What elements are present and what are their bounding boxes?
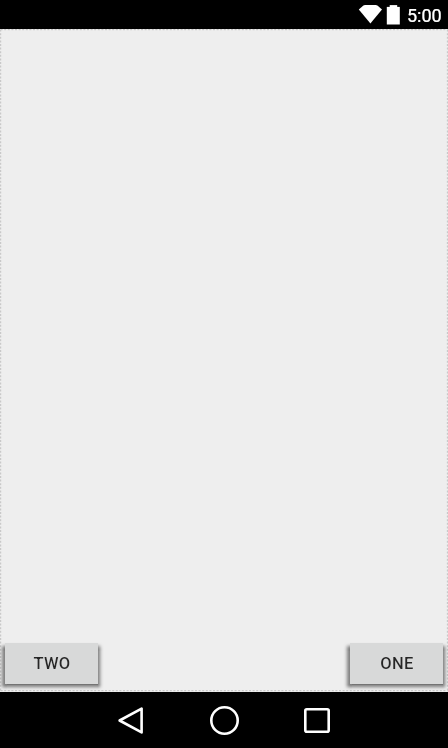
staticText: ONE: [380, 654, 414, 673]
staticText: 5:00: [407, 5, 442, 26]
button[interactable]: Home: [199, 694, 249, 746]
button[interactable]: ONE: [350, 643, 443, 684]
staticText: TWO: [33, 654, 71, 673]
button[interactable]: TWO: [5, 643, 98, 684]
button[interactable]: Recent apps: [292, 694, 342, 746]
button[interactable]: Back: [105, 694, 155, 746]
